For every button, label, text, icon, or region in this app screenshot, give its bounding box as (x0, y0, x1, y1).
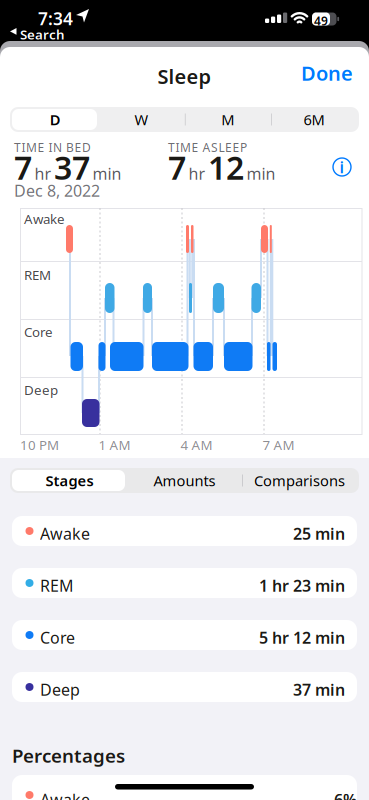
staticText: Dec 8, 2022 (14, 180, 100, 201)
staticText: Core (24, 323, 53, 341)
staticText: Awake (24, 210, 65, 228)
button[interactable]: W (98, 107, 184, 132)
staticText: Core (40, 627, 75, 648)
staticText: 7:34 (38, 7, 73, 30)
staticText: 49 (314, 13, 328, 29)
staticText: W (134, 110, 148, 129)
staticText: 12 (208, 146, 244, 188)
staticText: Comparisons (254, 471, 345, 490)
staticText: Done (301, 60, 353, 86)
staticText: TIME ASLEEP (168, 139, 247, 155)
staticText: 4 AM (180, 436, 212, 454)
staticText: min (92, 163, 121, 184)
staticText: 7 AM (262, 436, 294, 454)
staticText: M (221, 110, 234, 129)
button[interactable]: 6M (271, 107, 357, 132)
staticText: 6M (303, 110, 324, 129)
staticText: REM (24, 266, 51, 284)
staticText: Sleep (157, 63, 211, 90)
staticText: 6% (334, 789, 357, 800)
staticText: 5 hr 12 min (259, 627, 345, 648)
staticText: Amounts (153, 471, 215, 490)
button[interactable]: D (12, 107, 98, 132)
staticText: Deep (40, 679, 80, 700)
button[interactable]: Amounts (127, 468, 242, 493)
staticText: Stages (45, 471, 93, 490)
staticText: Awake (40, 523, 90, 544)
staticText: 7 (14, 146, 32, 188)
staticText: 10 PM (20, 436, 59, 454)
staticText: 25 min (293, 523, 345, 544)
button[interactable]: Stages (12, 468, 127, 493)
staticText: REM (40, 575, 74, 596)
button[interactable]: Done (283, 63, 353, 83)
staticText: i (339, 156, 344, 178)
staticText: 37 (54, 146, 90, 188)
staticText: TIME IN BED (14, 139, 91, 155)
staticText: Awake (40, 789, 90, 800)
button[interactable]: i (333, 158, 351, 176)
staticText: 1 AM (98, 436, 130, 454)
staticText: Percentages (12, 743, 125, 768)
staticText: 7 (168, 146, 186, 188)
staticText: Search (20, 25, 65, 43)
staticText: 1 hr 23 min (259, 575, 345, 596)
button[interactable]: Comparisons (242, 468, 357, 493)
staticText: D (50, 110, 61, 129)
staticText: Deep (24, 381, 58, 399)
staticText: 37 min (293, 679, 345, 700)
staticText: hr (34, 163, 51, 184)
button[interactable]: M (184, 107, 271, 132)
staticText: hr (188, 163, 205, 184)
staticText: min (246, 163, 275, 184)
